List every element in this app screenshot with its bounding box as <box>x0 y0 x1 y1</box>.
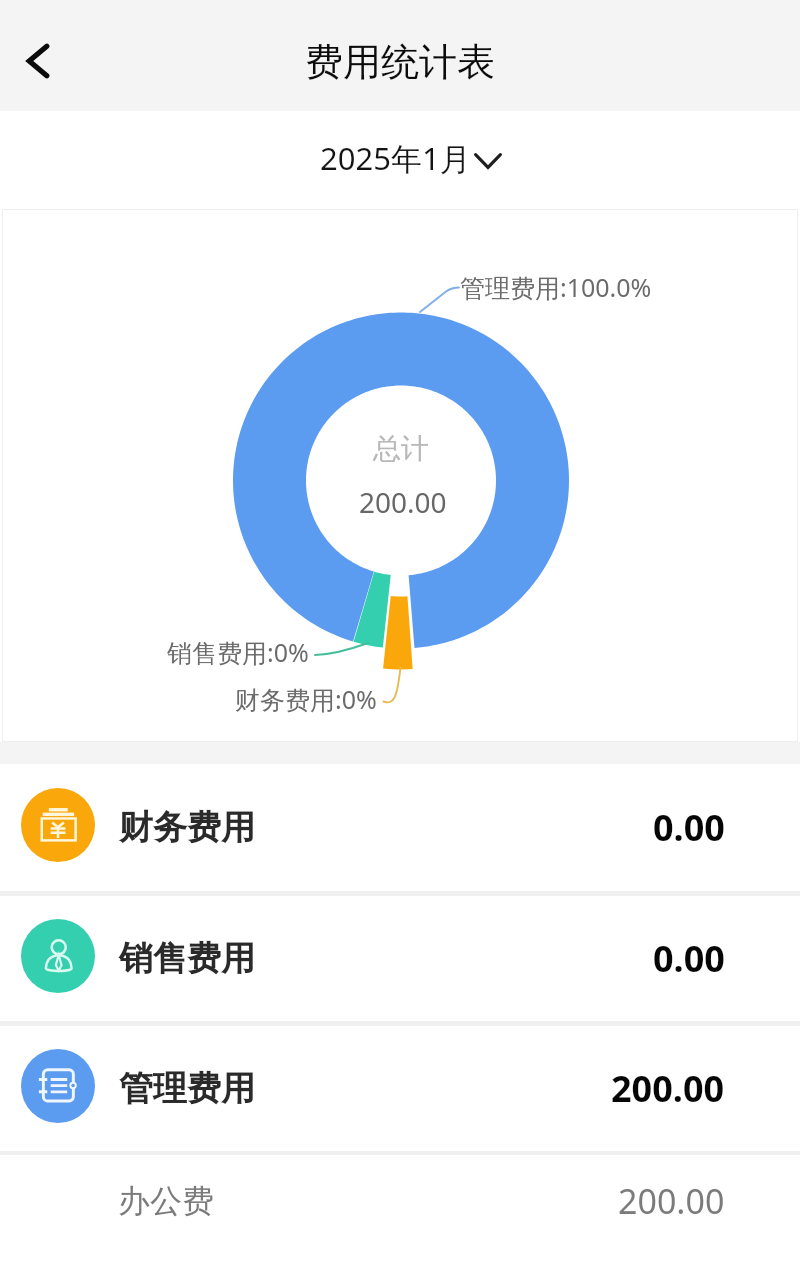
staticText: 费用统计表 <box>305 38 495 86</box>
button[interactable]: 管理费用 <box>0 1026 800 1151</box>
staticText: 200.00 <box>611 1064 725 1113</box>
staticText: 财务费用 <box>119 806 255 849</box>
button[interactable]: Select month 2025年1月 <box>310 129 512 187</box>
staticText: 2025年1月 <box>320 137 471 179</box>
staticText: 管理费用 <box>119 1067 255 1110</box>
staticText: 销售费用 <box>119 937 255 980</box>
button[interactable]: 销售费用 <box>0 896 800 1021</box>
staticText: 办公费 <box>118 1181 214 1221</box>
staticText: 200.00 <box>618 1178 725 1224</box>
staticText: 财务费用:0% <box>235 682 377 716</box>
staticText: 0.00 <box>653 803 725 852</box>
staticText: 管理费用:100.0% <box>460 270 652 304</box>
staticText: 200.00 <box>359 483 447 521</box>
staticText: 总计 <box>373 431 429 466</box>
staticText: 销售费用:0% <box>167 635 309 669</box>
staticText: 0.00 <box>653 934 725 983</box>
button[interactable]: 财务费用 <box>0 764 800 891</box>
button[interactable]: 办公费 <box>0 1155 800 1247</box>
button[interactable]: Back <box>4 31 72 91</box>
